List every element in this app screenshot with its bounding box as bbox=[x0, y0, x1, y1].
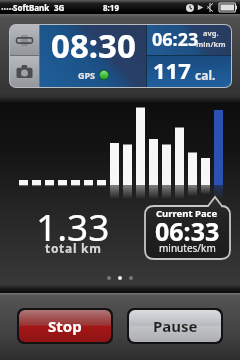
button[interactable]: 08:30 bbox=[40, 25, 146, 87]
staticText: min/km bbox=[196, 39, 226, 49]
button[interactable]: Stop bbox=[19, 310, 111, 342]
staticText: avg. bbox=[203, 28, 219, 38]
staticText: SoftBank bbox=[13, 2, 50, 13]
staticText: minutes/km bbox=[159, 241, 216, 255]
staticText: 06:23 bbox=[152, 27, 199, 52]
staticText: 1.33 bbox=[36, 201, 110, 251]
staticText: 3G bbox=[54, 2, 65, 13]
staticText: 06:33 bbox=[155, 214, 220, 248]
staticText: cal. bbox=[195, 67, 216, 83]
button[interactable]: 117 bbox=[147, 56, 231, 87]
button[interactable]: Pause bbox=[129, 310, 221, 342]
staticText: Pause bbox=[153, 316, 198, 336]
staticText: 8:19 bbox=[103, 2, 119, 13]
staticText: GPS bbox=[78, 69, 96, 81]
button[interactable]: Map view bbox=[10, 25, 39, 55]
staticText: total km bbox=[45, 240, 102, 256]
staticText: 117 bbox=[153, 55, 191, 85]
button[interactable]: 06:23 bbox=[147, 25, 231, 55]
staticText: 08:30 bbox=[51, 25, 136, 68]
staticText: Current Pace bbox=[156, 207, 218, 220]
staticText: Stop bbox=[48, 316, 82, 336]
button[interactable]: Camera bbox=[10, 56, 39, 87]
button[interactable]: Current Pace bbox=[144, 196, 232, 260]
